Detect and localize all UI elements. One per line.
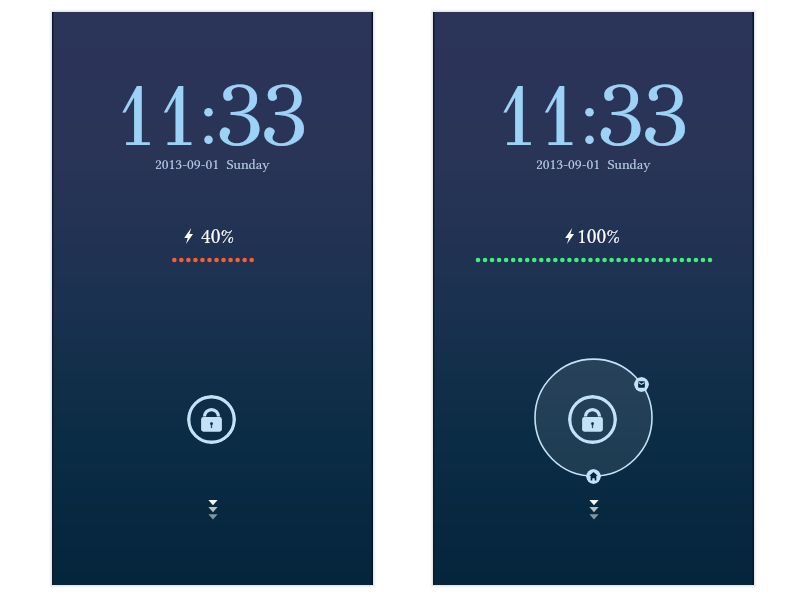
staticText: 33 (596, 64, 685, 169)
button[interactable]: Unlock (187, 395, 236, 444)
staticText: 40% (201, 224, 234, 248)
button[interactable]: Messages (634, 377, 649, 392)
button[interactable]: Unlock (568, 395, 617, 444)
staticText: 100% (577, 224, 620, 248)
staticText: 33 (215, 64, 304, 169)
staticText: 2013-09-01 Sunday (536, 156, 651, 173)
button[interactable]: Home (586, 469, 601, 484)
staticText: 11 (115, 64, 198, 169)
staticText: 2013-09-01 Sunday (155, 156, 270, 173)
staticText: 11 (496, 64, 579, 169)
